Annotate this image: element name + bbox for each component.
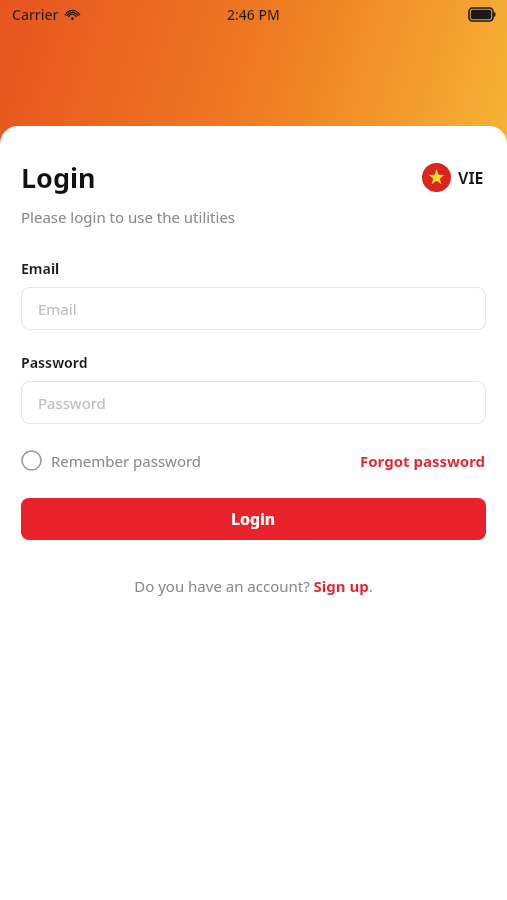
staticText: Password [21,353,88,372]
button[interactable]: Forgot password [360,447,486,475]
button[interactable]: Email [21,287,486,330]
button[interactable]: Remember password [21,446,202,475]
staticText: Carrier [12,5,59,24]
staticText: Email [21,259,60,278]
staticText: Remember password [51,451,202,471]
staticText: 2:46 PM [227,5,280,24]
staticText: Do you have an account? Sign up. [134,576,373,596]
staticText: Forgot password [360,451,486,471]
staticText: Login [231,508,276,530]
button[interactable]: Change language, Vietnamese [420,161,486,194]
button[interactable]: Do you have an account? Sign up. [130,574,377,598]
button[interactable]: Login [21,498,486,540]
staticText: Please login to use the utilities [21,207,236,227]
staticText: VIE [458,167,484,189]
button[interactable]: Password [21,381,486,424]
staticText: Email [38,299,77,319]
staticText: Password [38,393,106,413]
staticText: Login [21,159,96,196]
